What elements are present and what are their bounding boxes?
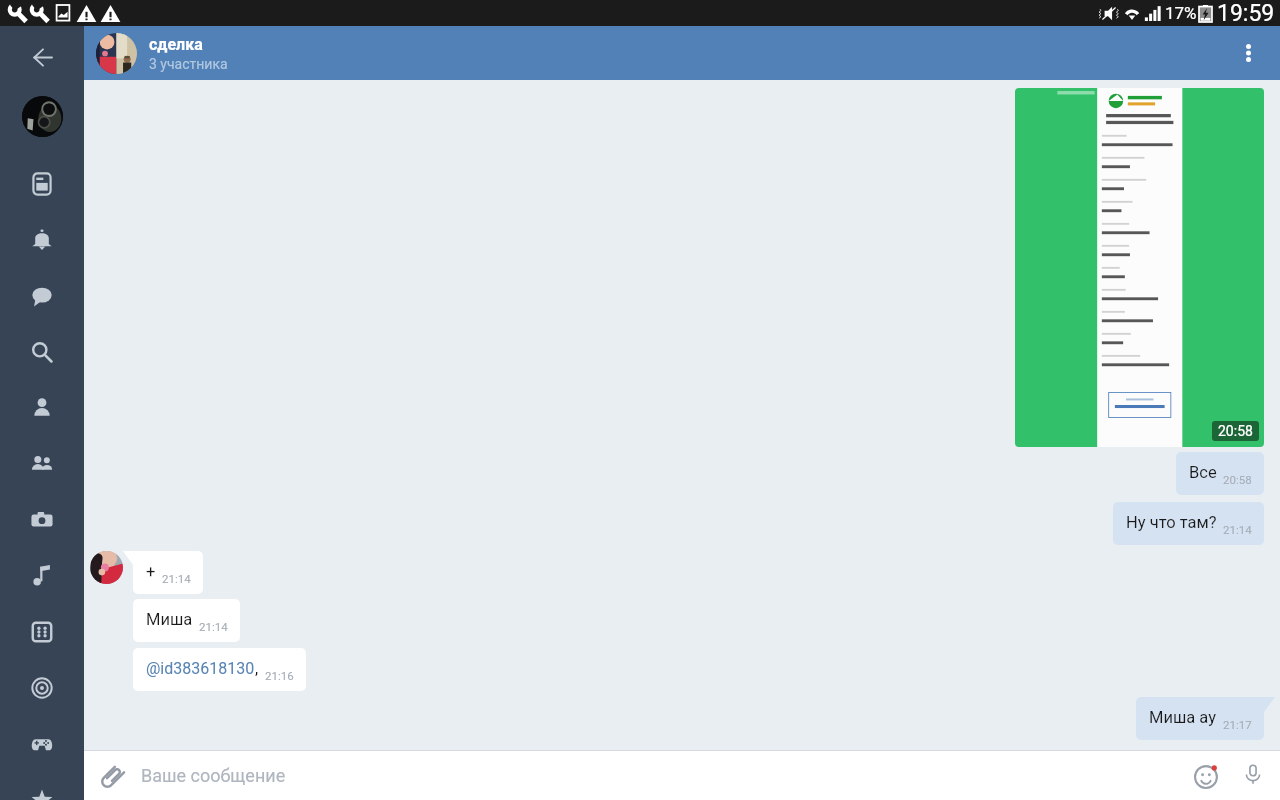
button[interactable]: Ну что там?	[1113, 502, 1264, 545]
button[interactable]: Voice message	[1228, 751, 1277, 800]
staticText: +	[146, 562, 156, 581]
button[interactable]: Emoji	[1182, 751, 1231, 800]
staticText: 21:14	[199, 620, 228, 633]
staticText: 21:14	[1223, 523, 1252, 536]
staticText: 19:59	[1217, 0, 1275, 26]
button[interactable]: Attach file	[88, 751, 137, 800]
staticText: @id383618130	[146, 659, 255, 678]
button[interactable]: Messages	[14, 268, 70, 324]
button[interactable]: Games	[14, 716, 70, 772]
button[interactable]: Back	[21, 35, 65, 79]
staticText: Все	[1189, 463, 1217, 482]
button[interactable]: Ads	[14, 660, 70, 716]
button[interactable]: Friends	[14, 436, 70, 492]
button[interactable]: Photo message	[1015, 88, 1264, 447]
button[interactable]: +	[133, 551, 203, 594]
button[interactable]: Photos	[14, 492, 70, 548]
staticText: 21:14	[162, 572, 191, 585]
staticText: Ваше сообщение	[141, 765, 286, 786]
staticText: Миша ау	[1149, 708, 1217, 727]
button[interactable]: Music	[14, 548, 70, 604]
button[interactable]: My profile	[22, 96, 63, 137]
button[interactable]: Все	[1176, 452, 1264, 495]
button[interactable]: Миша	[133, 599, 240, 642]
staticText: Ну что там?	[1126, 513, 1217, 532]
staticText: 21:17	[1223, 718, 1252, 731]
staticText: сделка	[149, 35, 203, 54]
button[interactable]: Bookmarks	[14, 772, 70, 800]
staticText: 3 участника	[149, 56, 228, 72]
button[interactable]: Search	[14, 324, 70, 380]
button[interactable]: Sender avatar	[90, 551, 123, 584]
staticText: 20:58	[1218, 423, 1253, 439]
staticText: 17%	[1165, 3, 1197, 23]
button[interactable]: @id383618130	[133, 648, 306, 691]
button[interactable]: Chat photo	[96, 33, 137, 74]
staticText: Миша	[146, 610, 193, 629]
button[interactable]: Notifications	[14, 212, 70, 268]
button[interactable]: Apps	[14, 604, 70, 660]
staticText: ,	[255, 659, 259, 678]
button[interactable]: Миша ау	[1136, 697, 1264, 740]
button[interactable]: News	[14, 156, 70, 212]
staticText: 21:16	[265, 669, 294, 682]
staticText: 20:58	[1223, 473, 1252, 486]
button[interactable]: More options	[1221, 26, 1275, 80]
button[interactable]: Profile	[14, 380, 70, 436]
